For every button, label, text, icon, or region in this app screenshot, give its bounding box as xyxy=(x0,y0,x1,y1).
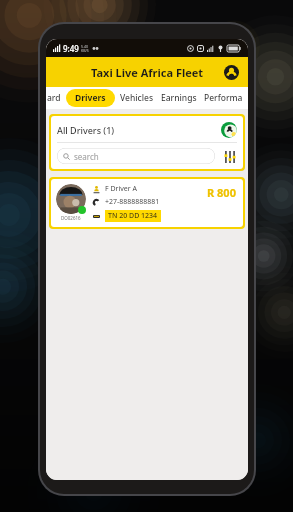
button[interactable]: Account xyxy=(222,63,240,81)
staticText: 9:49 xyxy=(63,43,79,54)
button[interactable]: ard xyxy=(47,87,61,109)
button[interactable]: Add driver xyxy=(220,121,237,138)
button[interactable]: DO02616 xyxy=(51,179,243,227)
button[interactable]: Vehicles xyxy=(120,87,154,109)
button[interactable]: Filter xyxy=(222,149,237,164)
button[interactable]: Taxi Live Africa Fleet xyxy=(46,57,248,87)
staticText: Performa xyxy=(204,92,243,104)
button[interactable]: Performa xyxy=(204,87,243,109)
staticText: search xyxy=(74,151,99,162)
staticText: All Drivers (1) xyxy=(57,124,115,136)
staticText: Vehicles xyxy=(120,92,154,104)
button[interactable]: search xyxy=(57,148,215,164)
staticText: 5.40 KB/S xyxy=(81,44,89,53)
button[interactable]: Drivers xyxy=(66,89,115,107)
staticText: R 800 xyxy=(207,185,236,200)
staticText: DO02616 xyxy=(61,215,81,221)
staticText: F Driver A xyxy=(105,184,137,194)
staticText: TN 20 DD 1234 xyxy=(108,211,158,221)
staticText: Earnings xyxy=(161,92,197,104)
staticText: ard xyxy=(47,92,61,104)
button[interactable]: Earnings xyxy=(161,87,197,109)
staticText: +27-8888888881 xyxy=(105,197,160,207)
staticText: Taxi Live Africa Fleet xyxy=(91,65,204,80)
staticText: Drivers xyxy=(75,92,106,104)
